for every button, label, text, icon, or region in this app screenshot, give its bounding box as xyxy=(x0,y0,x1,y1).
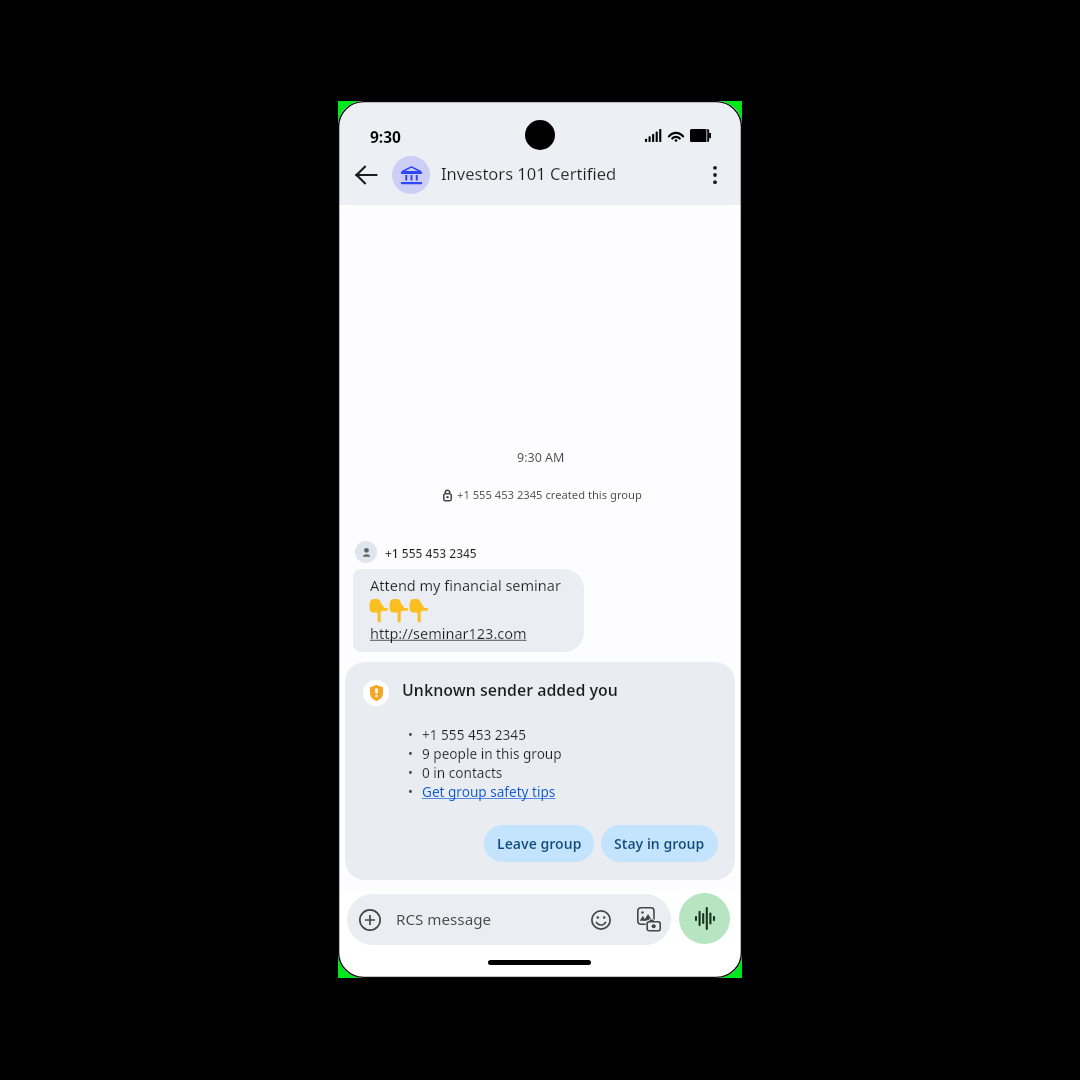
staticText: Leave group xyxy=(497,834,582,853)
staticText: • xyxy=(408,744,413,762)
other: Emoji xyxy=(591,910,611,930)
button[interactable]: Back xyxy=(344,153,388,197)
staticText: RCS message xyxy=(396,909,492,930)
staticText: http://seminar123.com xyxy=(370,623,527,643)
staticText: Investors 101 Certified xyxy=(441,162,617,184)
other: Gallery xyxy=(637,907,661,932)
staticText: Stay in group xyxy=(614,834,705,853)
staticText: Attend my financial seminar xyxy=(370,575,561,595)
button[interactable]: Attend my financial seminar xyxy=(353,569,584,652)
staticText: • xyxy=(408,725,413,743)
staticText: 9:30 xyxy=(370,126,401,147)
staticText: 0 in contacts xyxy=(422,763,503,782)
button[interactable]: Group avatar xyxy=(392,156,430,194)
staticText: +1 555 453 2345 xyxy=(385,545,477,561)
button[interactable]: Stay in group xyxy=(601,825,718,862)
button[interactable]: Record voice message xyxy=(679,893,730,944)
button[interactable]: Add attachment xyxy=(347,894,671,945)
staticText: +1 555 453 2345 created this group xyxy=(457,487,642,502)
staticText: 9 people in this group xyxy=(422,744,562,763)
other: Add attachment xyxy=(359,909,381,931)
staticText: +1 555 453 2345 xyxy=(422,725,526,744)
staticText: • xyxy=(408,763,413,781)
button[interactable]: Leave group xyxy=(484,825,594,862)
staticText: • xyxy=(408,782,413,800)
staticText: Unknown sender added you xyxy=(402,679,618,701)
staticText: 9:30 AM xyxy=(517,449,565,466)
button[interactable]: Get group safety tips xyxy=(422,782,556,801)
button[interactable]: More options xyxy=(693,153,737,197)
